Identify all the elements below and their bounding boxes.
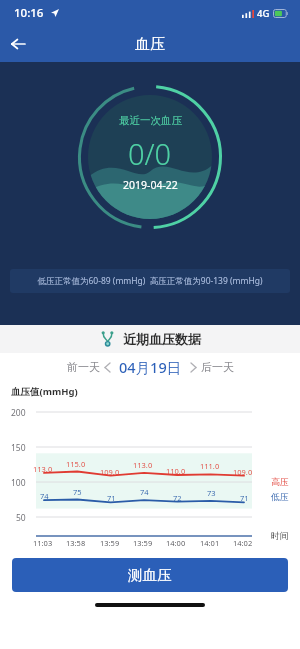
staticText: 113.0 [33, 464, 53, 474]
staticText: 最近一次血压 [119, 114, 182, 127]
staticText: 测血压 [128, 566, 172, 584]
staticText: 100 [11, 477, 26, 489]
button[interactable]: Back [0, 26, 36, 62]
button[interactable]: 近期血压数据 [0, 325, 300, 353]
staticText: 109.0 [100, 467, 120, 477]
staticText: 14:00 [166, 538, 186, 548]
staticText: 75 [73, 487, 82, 497]
staticText: 200 [11, 407, 26, 419]
staticText: 13:59 [100, 538, 120, 548]
staticText: 11:03 [33, 538, 53, 548]
staticText: 10:16 [14, 5, 44, 21]
staticText: 113.0 [133, 460, 153, 470]
staticText: 近期血压数据 [123, 331, 201, 347]
staticText: 13:58 [66, 538, 86, 548]
staticText: 低压正常值为60-89 (mmHg) 高压正常值为90-139 (mmHg) [37, 275, 263, 287]
staticText: 高压 [271, 476, 289, 487]
staticText: 前一天 [67, 360, 100, 374]
staticText: 110.0 [166, 466, 186, 476]
staticText: 111.0 [200, 461, 220, 471]
staticText: 71 [240, 493, 249, 503]
staticText: 14:01 [200, 538, 220, 548]
staticText: 时间 [271, 530, 289, 541]
staticText: 4G [257, 7, 270, 20]
staticText: 72 [173, 493, 182, 503]
staticText: 血压 [135, 35, 165, 54]
staticText: 14:02 [233, 538, 253, 548]
button[interactable]: 04月19日 [119, 357, 182, 377]
staticText: 73 [207, 488, 216, 498]
staticText: 2019-04-22 [123, 178, 178, 192]
button[interactable]: 测血压 [12, 558, 288, 592]
staticText: 71 [107, 493, 116, 503]
staticText: 109.0 [233, 467, 253, 477]
staticText: 13:59 [133, 538, 153, 548]
staticText: 74 [140, 487, 149, 497]
staticText: 0/0 [128, 134, 172, 173]
staticText: 低压 [271, 491, 289, 502]
staticText: 150 [11, 442, 26, 454]
staticText: 血压值(mmHg) [11, 385, 78, 398]
button[interactable]: 后一天 [191, 360, 234, 374]
button[interactable]: 前一天 [67, 360, 110, 374]
staticText: 115.0 [66, 459, 86, 469]
staticText: 50 [16, 512, 26, 524]
staticText: 74 [40, 491, 49, 501]
staticText: 后一天 [201, 360, 234, 374]
